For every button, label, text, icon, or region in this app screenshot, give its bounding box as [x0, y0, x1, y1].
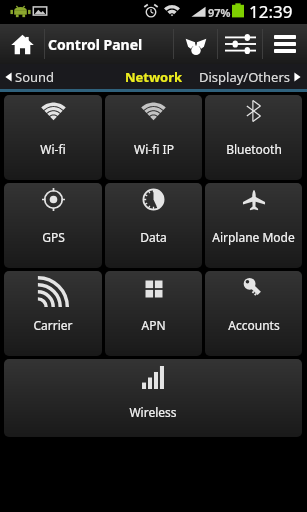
staticText: Bluetooth	[226, 141, 282, 157]
button[interactable]: Home	[0, 24, 44, 64]
button[interactable]: Accounts	[205, 271, 302, 356]
staticText: Network	[125, 68, 183, 86]
staticText: Wireless	[129, 404, 177, 420]
button[interactable]: Rate	[174, 24, 217, 64]
button[interactable]: Data	[105, 183, 202, 268]
staticText: 12:39	[249, 0, 293, 23]
staticText: Display/Others	[199, 68, 290, 86]
staticText: Accounts	[228, 317, 280, 333]
staticText: Airplane Mode	[212, 229, 295, 245]
staticText: APN	[141, 317, 166, 333]
staticText: Data	[140, 229, 167, 245]
button[interactable]: Wi-fi IP	[105, 95, 202, 180]
button[interactable]: APN	[105, 271, 202, 356]
button[interactable]: Display/Others	[199, 64, 307, 89]
button[interactable]: Network	[114, 64, 194, 89]
button[interactable]: Settings	[218, 24, 262, 64]
button[interactable]: Carrier	[4, 271, 102, 356]
staticText: 97%	[208, 5, 231, 20]
button[interactable]: Menu	[263, 24, 307, 64]
button[interactable]: Bluetooth	[205, 95, 302, 180]
staticText: Carrier	[33, 317, 73, 333]
button[interactable]: Wi-fi	[4, 95, 102, 180]
staticText: Wi-fi	[40, 141, 66, 157]
button[interactable]: Airplane Mode	[205, 183, 302, 268]
staticText: Wi-fi IP	[134, 141, 174, 157]
button[interactable]: Wireless	[4, 359, 302, 437]
staticText: GPS	[42, 229, 65, 245]
button[interactable]: Sound	[0, 64, 70, 89]
button[interactable]: GPS	[4, 183, 102, 268]
staticText: Control Panel	[48, 35, 143, 54]
staticText: Sound	[15, 68, 55, 86]
